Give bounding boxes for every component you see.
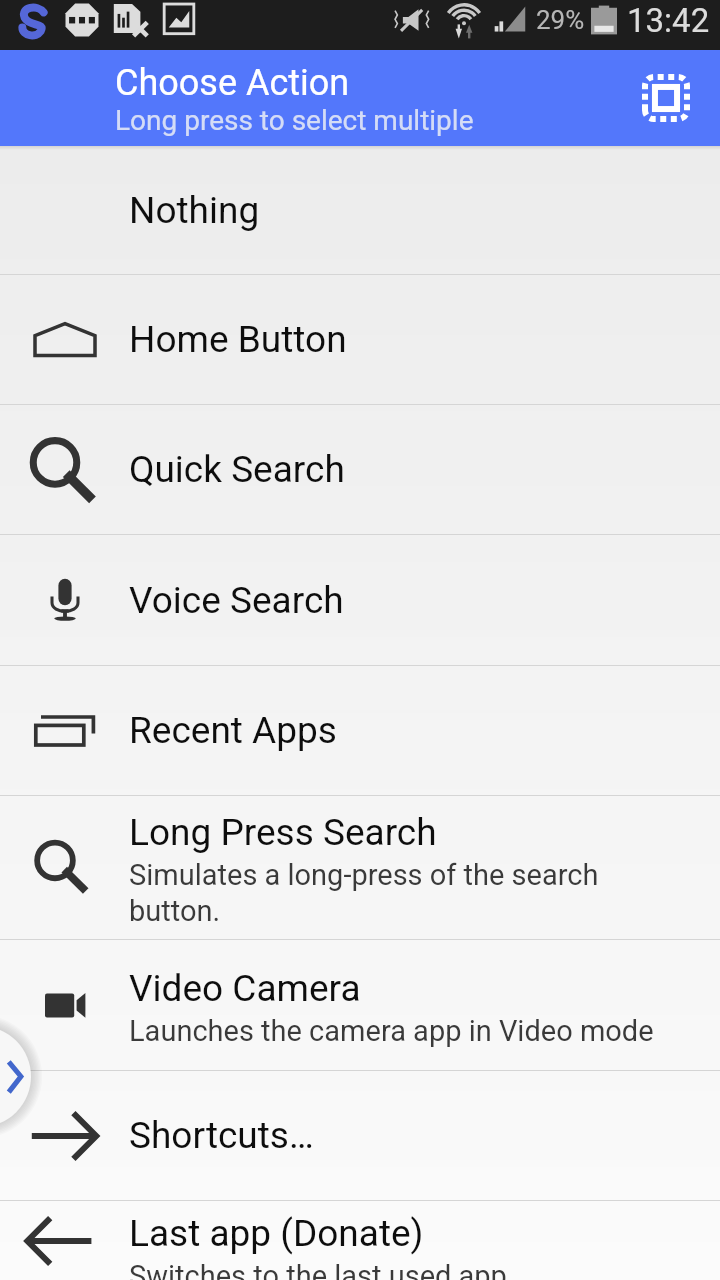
button[interactable]: Nothing [0,146,720,274]
staticText: Last app (Donate) [129,1212,424,1255]
staticText: 13:42 [627,1,710,40]
staticText: Voice Search [129,579,344,622]
staticText: Nothing [129,189,260,232]
staticText: Long press to select multiple [115,104,474,137]
staticText: Shortcuts… [129,1114,314,1157]
staticText: Home Button [129,318,347,361]
button[interactable]: Home Button [0,275,720,404]
staticText: Switches to the last used app [129,1259,507,1280]
staticText: Launches the camera app in Video mode [129,1014,654,1048]
button[interactable]: Last app (Donate) [0,1176,720,1280]
button[interactable]: Quick Search [0,405,720,534]
staticText: Simulates a long-press of the search but… [129,858,599,928]
staticText: Long Press Search [129,811,437,854]
staticText: Choose Action [115,62,350,104]
staticText: Quick Search [129,448,345,491]
button[interactable]: Recent Apps [0,666,720,795]
button[interactable]: Select all [628,60,704,136]
button[interactable]: Long Press Search [0,796,720,939]
staticText: Video Camera [129,967,361,1010]
button[interactable]: Shortcuts… [0,1071,720,1200]
button[interactable]: Voice Search [0,535,720,665]
button[interactable]: Open navigation drawer [0,1026,31,1127]
staticText: 29% [536,5,585,35]
staticText: Recent Apps [129,709,337,752]
button[interactable]: Video Camera [0,940,720,1070]
